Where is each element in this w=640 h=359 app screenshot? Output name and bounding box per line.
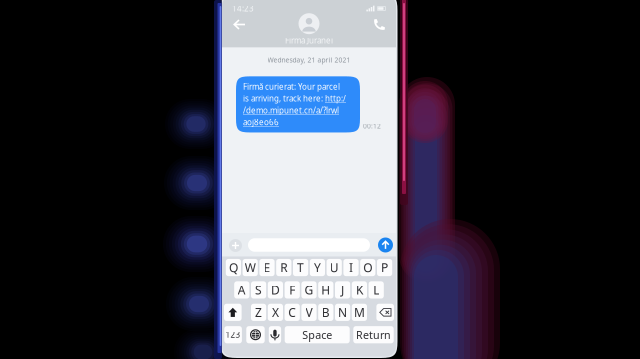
- button[interactable]: D: [268, 281, 283, 298]
- staticText: P: [381, 260, 388, 275]
- button[interactable]: Space: [285, 326, 350, 343]
- button[interactable]: Send: [378, 237, 393, 252]
- staticText: I: [349, 260, 353, 275]
- button[interactable]: G: [301, 281, 317, 298]
- staticText: U: [330, 260, 339, 275]
- staticText: Y: [314, 260, 321, 275]
- staticText: 00:12: [363, 122, 381, 130]
- staticText: aoj8eo66: [243, 117, 279, 127]
- staticText: K: [356, 282, 363, 298]
- button[interactable]: Y: [310, 259, 325, 276]
- staticText: W: [245, 260, 256, 275]
- button[interactable]: Shift: [224, 304, 242, 321]
- button[interactable]: F: [285, 281, 300, 298]
- staticText: V: [305, 304, 312, 320]
- staticText: S: [255, 282, 262, 298]
- button[interactable]: N: [335, 304, 350, 321]
- button[interactable]: U: [327, 259, 342, 276]
- staticText: is arriving, track here: http:/: [243, 93, 346, 104]
- staticText: G: [304, 282, 313, 298]
- staticText: Wednesday, 21 april 2021: [267, 55, 350, 64]
- button[interactable]: Next keyboard: [246, 326, 265, 343]
- button[interactable]: E: [259, 259, 275, 276]
- button[interactable]: K: [352, 281, 367, 298]
- button[interactable]: S: [251, 281, 266, 298]
- button[interactable]: R: [276, 259, 291, 276]
- staticText: Space: [302, 328, 332, 342]
- staticText: L: [373, 282, 379, 298]
- button[interactable]: Z: [251, 304, 266, 321]
- button[interactable]: J: [335, 281, 350, 298]
- staticText: R: [280, 260, 287, 275]
- button[interactable]: P: [377, 259, 392, 276]
- button[interactable]: 123: [224, 326, 242, 343]
- button[interactable]: Back: [233, 18, 247, 31]
- staticText: J: [341, 282, 344, 298]
- button[interactable]: Firmă curierat: Your parcel: [236, 76, 360, 132]
- staticText: Firmă curierat: Your parcel: [243, 81, 340, 92]
- button[interactable]: Message: [248, 238, 370, 252]
- staticText: /demo.mipunet.cn/a/?lrwl: [243, 105, 339, 116]
- button[interactable]: Q: [226, 259, 241, 276]
- staticText: E: [263, 260, 270, 275]
- button[interactable]: X: [268, 304, 283, 321]
- staticText: B: [322, 304, 330, 320]
- button[interactable]: Dictate: [269, 326, 281, 343]
- button[interactable]: M: [352, 304, 367, 321]
- staticText: M: [354, 304, 365, 320]
- staticText: Return: [356, 328, 391, 342]
- button[interactable]: H: [318, 281, 333, 298]
- staticText: Firmă Juranei: [285, 35, 333, 46]
- button[interactable]: Return: [353, 326, 394, 343]
- staticText: Q: [229, 260, 238, 275]
- button[interactable]: V: [301, 304, 317, 321]
- staticText: D: [271, 282, 280, 298]
- button[interactable]: I: [343, 259, 359, 276]
- button[interactable]: T: [293, 259, 308, 276]
- staticText: A: [238, 282, 246, 298]
- button[interactable]: L: [369, 281, 384, 298]
- button[interactable]: Delete: [376, 304, 394, 321]
- staticText: F: [289, 282, 295, 298]
- button[interactable]: O: [360, 259, 375, 276]
- button[interactable]: W: [243, 259, 258, 276]
- staticText: Z: [255, 304, 262, 320]
- staticText: T: [297, 260, 304, 275]
- button[interactable]: Firmă Juranei: [285, 13, 333, 46]
- staticText: C: [288, 304, 296, 320]
- staticText: 14:23: [232, 3, 254, 14]
- button[interactable]: B: [318, 304, 333, 321]
- button[interactable]: Call: [372, 18, 386, 31]
- staticText: H: [321, 282, 330, 298]
- staticText: O: [363, 260, 372, 275]
- button[interactable]: Add attachment: [229, 239, 242, 252]
- button[interactable]: A: [234, 281, 249, 298]
- staticText: X: [272, 304, 279, 320]
- staticText: N: [338, 304, 347, 320]
- button[interactable]: C: [285, 304, 300, 321]
- staticText: 123: [226, 329, 241, 340]
